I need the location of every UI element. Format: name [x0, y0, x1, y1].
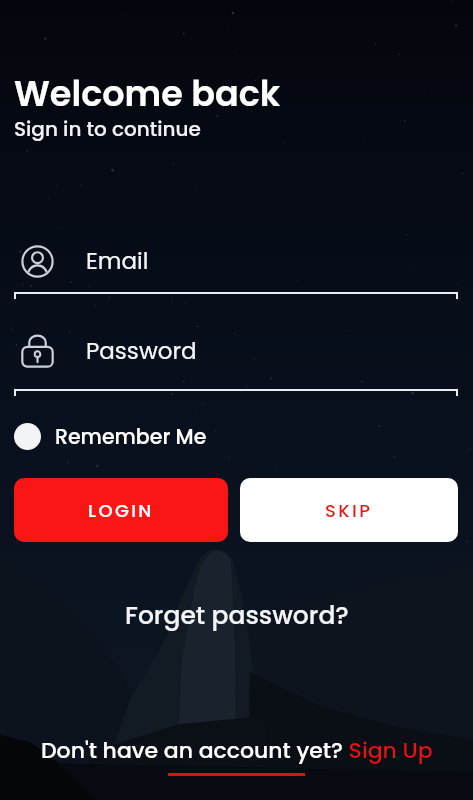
- button[interactable]: Password: [14, 330, 458, 372]
- button[interactable]: Forget password?: [125, 598, 349, 633]
- button[interactable]: LOGIN: [14, 478, 228, 542]
- button[interactable]: SKIP: [240, 478, 458, 542]
- staticText: SKIP: [325, 498, 373, 523]
- staticText: Password: [86, 335, 197, 367]
- staticText: Sign in to continue: [14, 115, 201, 143]
- staticText: Welcome back: [14, 69, 281, 118]
- button[interactable]: Remember Me: [14, 421, 207, 451]
- staticText: Email: [86, 245, 149, 277]
- button[interactable]: Email: [14, 240, 458, 282]
- button[interactable]: Don't have an account yet? Sign Up: [41, 735, 433, 766]
- staticText: LOGIN: [88, 498, 154, 523]
- staticText: Remember Me: [55, 422, 207, 451]
